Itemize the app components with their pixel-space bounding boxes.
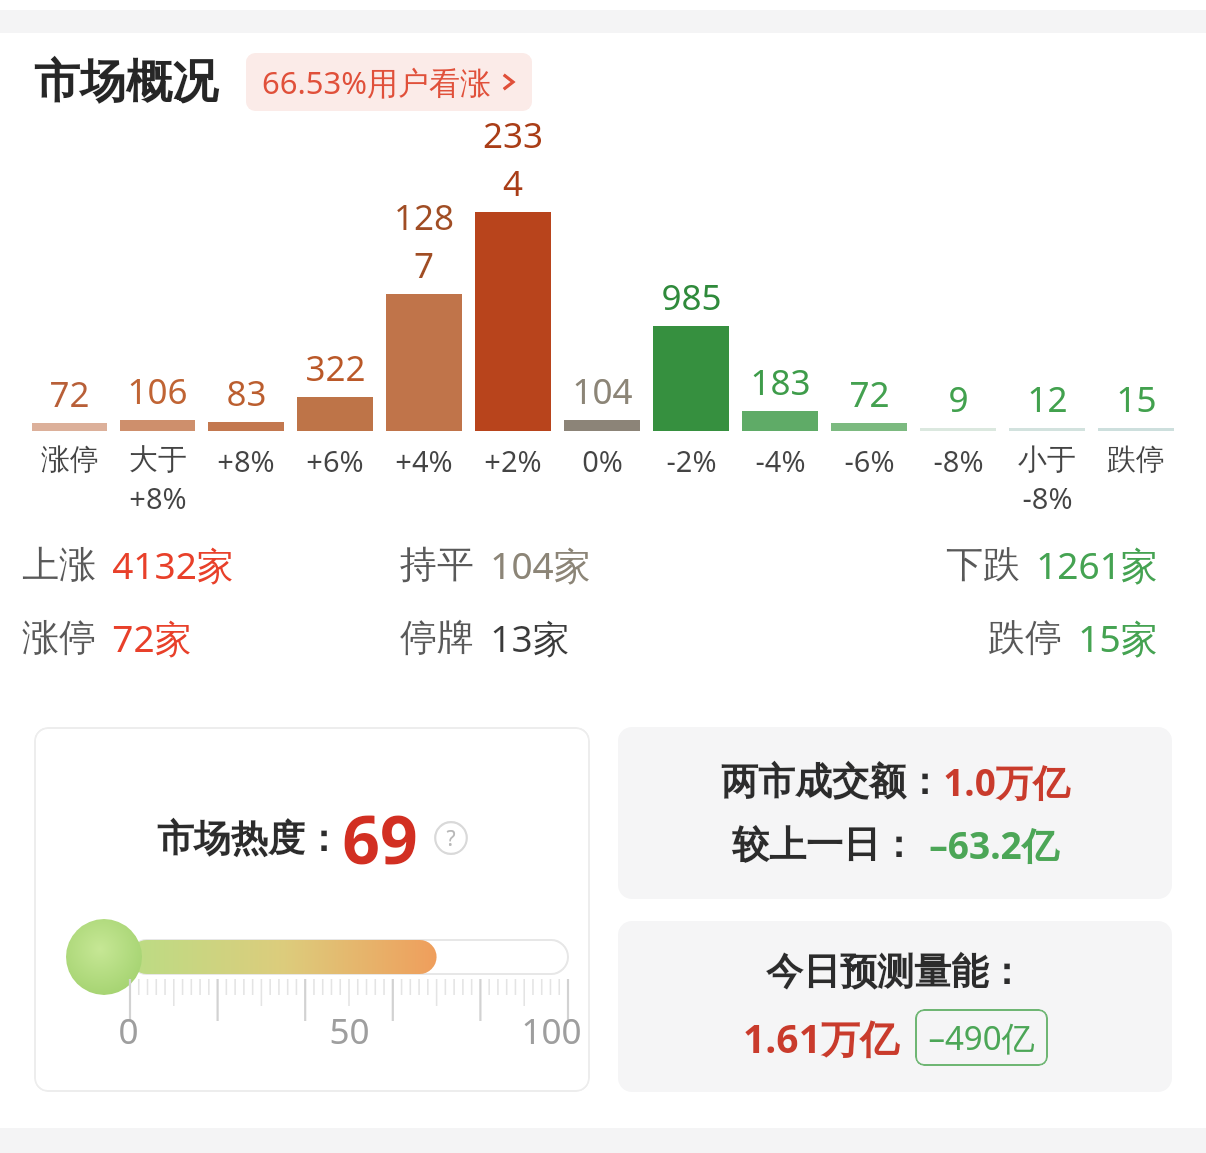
staticText: 66.53%用户看涨 — [262, 61, 491, 103]
staticText: 1287 — [386, 193, 462, 289]
button[interactable]: 市场热度说明 — [434, 821, 468, 855]
staticText: 72 — [849, 370, 890, 418]
button[interactable]: 104 — [564, 367, 640, 431]
button[interactable]: 106 — [120, 367, 195, 431]
staticText: 183 — [750, 358, 811, 406]
staticText: –490亿 — [928, 1015, 1035, 1060]
staticText: 1.0万亿 — [943, 756, 1070, 807]
staticText: 106 — [127, 367, 188, 415]
staticText: 上涨 — [22, 541, 96, 588]
button[interactable]: 72 — [32, 370, 107, 431]
staticText: 1261家 — [1036, 539, 1158, 590]
staticText: 9 — [948, 375, 969, 423]
staticText: -2% — [666, 441, 717, 480]
staticText: –63.2亿 — [929, 819, 1059, 870]
staticText: 跌停 — [1107, 441, 1165, 478]
button[interactable]: 72 — [831, 370, 907, 431]
staticText: 0% — [582, 441, 623, 480]
staticText: 50 — [329, 1007, 370, 1055]
staticText: 大于 — [129, 441, 187, 478]
staticText: 15 — [1116, 375, 1157, 423]
button[interactable]: 322 — [297, 344, 373, 431]
staticText: 今日预测量能： — [766, 948, 1025, 995]
button[interactable]: 15 — [1098, 375, 1174, 431]
staticText: 1.61万亿 — [743, 1011, 899, 1064]
staticText: 市场热度： — [157, 815, 342, 862]
staticText: -4% — [755, 441, 806, 480]
staticText: -8% — [933, 441, 984, 480]
button[interactable]: 市场热度： — [34, 727, 590, 1092]
staticText: 72家 — [112, 612, 192, 663]
staticText: 72 — [49, 370, 90, 418]
staticText: -8% — [1022, 478, 1073, 517]
staticText: 涨停 — [22, 614, 96, 661]
staticText: 跌停 — [988, 614, 1062, 661]
button[interactable]: 今日预测量能： — [618, 921, 1172, 1092]
staticText: 100 — [521, 1007, 582, 1055]
button[interactable]: 183 — [742, 358, 818, 431]
staticText: 104 — [572, 367, 633, 415]
staticText: 322 — [305, 344, 366, 392]
staticText: 两市成交额： — [721, 758, 943, 805]
staticText: 小于 — [1018, 441, 1076, 478]
staticText: 2334 — [475, 111, 551, 207]
staticText: +6% — [306, 441, 364, 480]
staticText: 停牌 — [400, 614, 474, 661]
staticText: +8% — [129, 478, 187, 517]
button[interactable]: 2334 — [475, 111, 551, 431]
staticText: 985 — [661, 273, 722, 321]
staticText: 104家 — [490, 539, 591, 590]
button[interactable]: 9 — [920, 375, 996, 431]
staticText: +4% — [395, 441, 453, 480]
staticText: +2% — [484, 441, 542, 480]
staticText: +8% — [217, 441, 275, 480]
staticText: -6% — [844, 441, 895, 480]
staticText: 0 — [118, 1007, 139, 1055]
staticText: 涨停 — [41, 441, 99, 478]
staticText: 4132家 — [112, 539, 234, 590]
button[interactable]: 985 — [653, 273, 729, 431]
button[interactable]: 两市成交额： — [618, 727, 1172, 899]
button[interactable]: 12 — [1009, 375, 1085, 431]
staticText: 69 — [342, 793, 418, 883]
staticText: 下跌 — [946, 541, 1020, 588]
staticText: ? — [446, 824, 456, 853]
staticText: 持平 — [400, 541, 474, 588]
staticText: 13家 — [490, 612, 570, 663]
button[interactable]: 66.53%用户看涨 — [246, 53, 532, 111]
staticText: 83 — [226, 369, 267, 417]
staticText: 15家 — [1078, 612, 1158, 663]
button[interactable]: 83 — [208, 369, 284, 431]
staticText: 市场概况 — [34, 53, 218, 111]
button[interactable]: 1287 — [386, 193, 462, 431]
staticText: 12 — [1027, 375, 1068, 423]
staticText: 较上一日： — [732, 821, 917, 868]
